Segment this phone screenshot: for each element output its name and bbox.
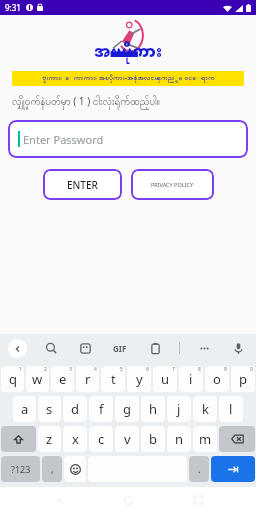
button[interactable]: u: [153, 366, 177, 392]
staticText: p: [239, 370, 247, 388]
staticText: 5: [120, 366, 123, 373]
button[interactable]: Recents: [187, 489, 209, 511]
button[interactable]: Stickers: [75, 338, 95, 358]
staticText: ဗူးကား၊ ေကာကား၊ အၿပိုကား-အစုံအလင္ၾကည့္ရႈ…: [42, 73, 215, 84]
button[interactable]: z: [38, 426, 61, 452]
staticText: a: [21, 400, 29, 418]
button[interactable]: Voice input: [228, 338, 248, 358]
staticText: 3: [69, 366, 72, 373]
staticText: .: [198, 462, 201, 476]
button[interactable]: b: [141, 426, 165, 452]
staticText: GIF: [113, 343, 127, 354]
button[interactable]: n: [167, 426, 191, 452]
button[interactable]: g: [115, 396, 139, 422]
staticText: 7: [172, 366, 175, 373]
button[interactable]: q: [1, 366, 24, 392]
staticText: r: [85, 370, 91, 388]
staticText: 9: [224, 366, 227, 373]
staticText: w: [32, 370, 43, 388]
button[interactable]: Back: [8, 339, 27, 358]
staticText: x: [72, 430, 79, 448]
button[interactable]: y: [127, 366, 151, 392]
button[interactable]: s: [38, 396, 61, 422]
button[interactable]: Enter Password: [8, 120, 248, 158]
staticText: 0: [250, 366, 253, 373]
staticText: j: [177, 400, 181, 418]
staticText: o: [213, 370, 221, 388]
button[interactable]: d: [63, 396, 87, 422]
button[interactable]: a: [13, 396, 36, 422]
staticText: လျှို့ဝှက်နံပတ်မှာ ( 1 ) ငါးလုံးရိုက်ထည့…: [12, 94, 248, 110]
button[interactable]: Enter: [211, 456, 255, 482]
button[interactable]: ?123: [1, 456, 40, 482]
staticText: 4: [94, 366, 97, 373]
staticText: c: [98, 430, 105, 448]
staticText: ,: [51, 462, 54, 476]
staticText: i: [189, 370, 193, 388]
button[interactable]: p: [231, 366, 255, 392]
staticText: n: [175, 430, 184, 448]
staticText: 1: [19, 366, 22, 373]
button[interactable]: t: [101, 366, 125, 392]
staticText: q: [9, 370, 17, 388]
button[interactable]: w: [26, 366, 49, 392]
staticText: 6: [146, 366, 149, 373]
staticText: z: [46, 430, 53, 448]
staticText: b: [149, 430, 157, 448]
staticText: k: [202, 400, 209, 418]
staticText: v: [124, 430, 131, 448]
button[interactable]: j: [167, 396, 191, 422]
button[interactable]: m: [193, 426, 217, 452]
staticText: s: [46, 400, 53, 418]
staticText: h: [149, 400, 158, 418]
button[interactable]: ENTER: [43, 169, 122, 200]
button[interactable]: c: [89, 426, 113, 452]
button[interactable]: Backspace: [219, 426, 255, 452]
button[interactable]: f: [89, 396, 113, 422]
button[interactable]: Clipboard: [145, 338, 165, 358]
staticText: t: [111, 370, 116, 388]
staticText: e: [59, 370, 67, 388]
button[interactable]: PRIVACY POLICY: [131, 169, 214, 200]
staticText: ENTER: [67, 178, 98, 192]
button[interactable]: GIF: [109, 338, 131, 358]
button[interactable]: o: [205, 366, 229, 392]
staticText: y: [136, 370, 143, 388]
staticText: g: [123, 400, 131, 418]
button[interactable]: e: [51, 366, 74, 392]
button[interactable]: i: [179, 366, 203, 392]
staticText: d: [71, 400, 79, 418]
button[interactable]: ,: [42, 456, 62, 482]
button[interactable]: Shift: [1, 426, 36, 452]
button[interactable]: h: [141, 396, 165, 422]
button[interactable]: v: [115, 426, 139, 452]
staticText: 9:31: [5, 2, 21, 13]
button[interactable]: .: [189, 456, 209, 482]
staticText: PRIVACY POLICY: [151, 181, 194, 188]
button[interactable]: More options: [194, 338, 214, 358]
button[interactable]: Emoji: [64, 456, 86, 482]
button[interactable]: k: [193, 396, 217, 422]
staticText: f: [99, 400, 104, 418]
staticText: m: [199, 430, 212, 448]
staticText: l: [229, 400, 233, 418]
staticText: 8: [198, 366, 201, 373]
button[interactable]: Search: [41, 338, 61, 358]
staticText: အၿပိုကား: [94, 37, 163, 70]
staticText: 2: [44, 366, 47, 373]
staticText: Enter Password: [23, 132, 104, 147]
button[interactable]: l: [219, 396, 243, 422]
staticText: u: [161, 370, 170, 388]
button[interactable]: x: [63, 426, 87, 452]
button[interactable]: r: [76, 366, 99, 392]
staticText: ?123: [11, 463, 31, 475]
